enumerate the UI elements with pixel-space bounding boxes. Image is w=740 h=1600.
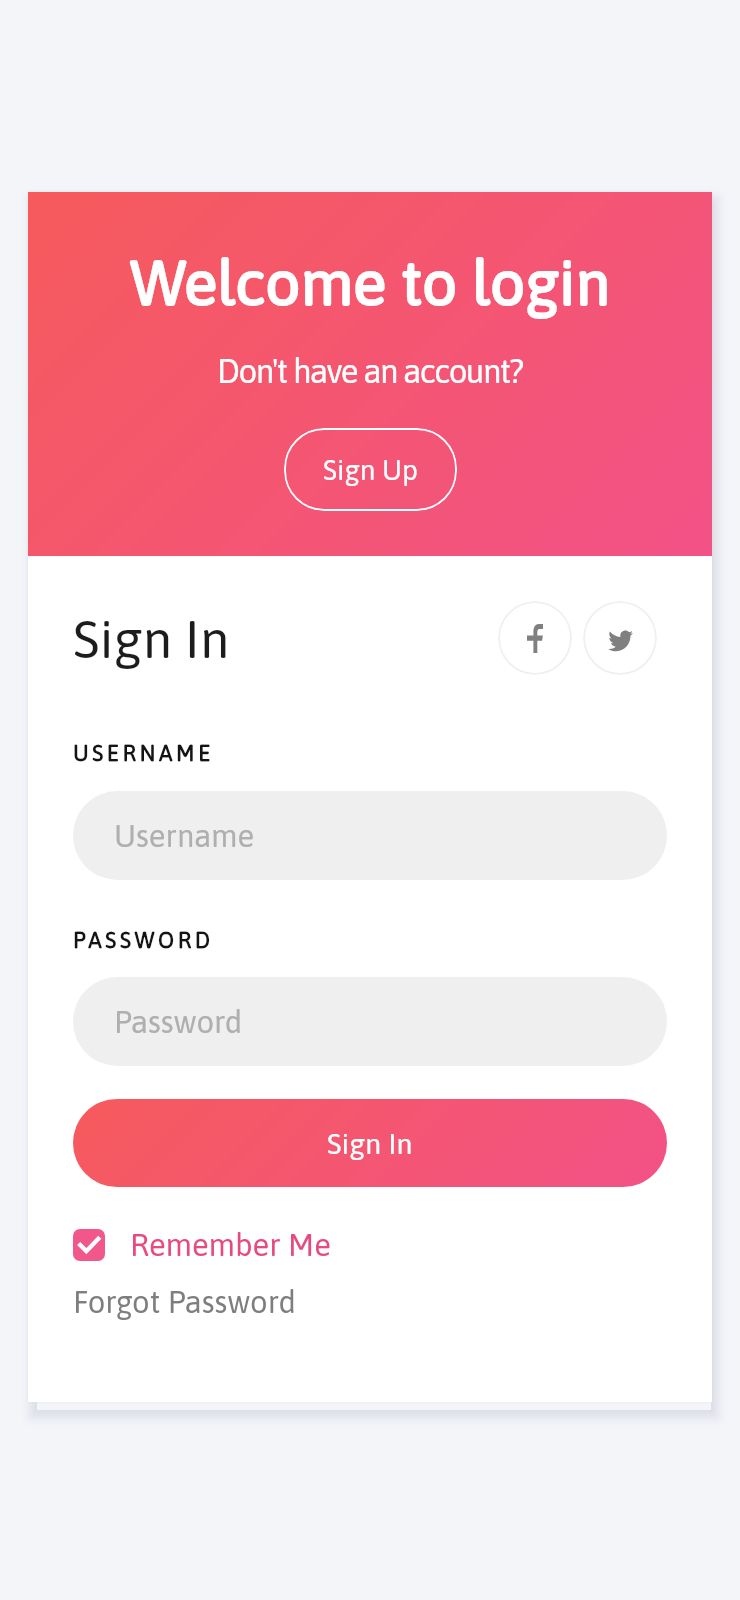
staticText: Username	[114, 818, 255, 854]
staticText: Sign In	[73, 608, 230, 669]
button[interactable]: Forgot Password	[73, 1284, 296, 1320]
staticText: Sign Up	[323, 454, 419, 486]
staticText: Remember Me	[130, 1227, 331, 1263]
staticText: USERNAME	[73, 740, 214, 765]
staticText: Password	[114, 1004, 243, 1040]
button[interactable]: Sign in with Facebook	[498, 601, 572, 675]
button[interactable]: Sign Up	[284, 428, 457, 511]
button[interactable]: Username	[73, 791, 667, 880]
button[interactable]: Remember Me	[73, 1227, 331, 1263]
button[interactable]: Sign in with Twitter	[583, 601, 657, 675]
staticText: Welcome to login	[130, 247, 611, 318]
staticText: Don't have an account?	[217, 352, 523, 390]
staticText: Sign In	[327, 1127, 413, 1160]
button[interactable]: Sign In	[73, 1099, 667, 1187]
button[interactable]: Password	[73, 977, 667, 1066]
staticText: PASSWORD	[73, 927, 214, 952]
